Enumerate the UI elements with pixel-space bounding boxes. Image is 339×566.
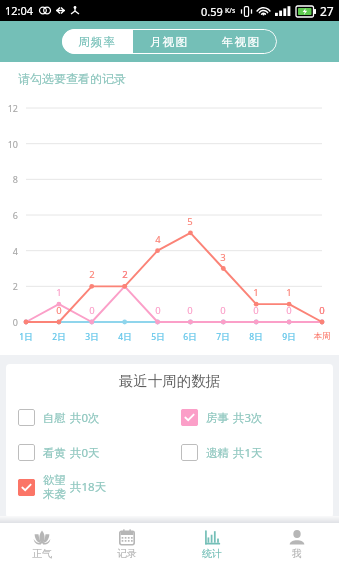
staticText: 遗精 — [206, 446, 229, 460]
staticText: 8 — [0, 173, 18, 185]
staticText: 0.59 — [201, 4, 223, 19]
staticText: 月视图 — [150, 35, 189, 49]
staticText: 0 — [148, 304, 168, 317]
button[interactable]: 月视图 — [133, 29, 205, 54]
staticText: 0 — [279, 304, 299, 317]
staticText: 1 — [49, 286, 69, 299]
staticText: 请勾选要查看的记录 — [18, 71, 126, 86]
staticText: 共18天 — [70, 479, 107, 495]
button[interactable]: 周频率 — [62, 29, 133, 54]
staticText: 最近十周的数据 — [6, 372, 333, 390]
staticText: 1 — [246, 286, 266, 299]
staticText: 0 — [0, 316, 18, 328]
button[interactable]: 年视图 — [205, 29, 277, 54]
staticText: 自慰 — [43, 411, 66, 425]
staticText: 4日 — [110, 331, 140, 343]
staticText: 12:04 — [5, 3, 34, 18]
button[interactable]: 正气 — [0, 523, 84, 566]
staticText: 年视图 — [222, 35, 261, 49]
staticText: 5日 — [143, 331, 173, 343]
staticText: 看黄 — [43, 446, 66, 460]
button[interactable]: 看黄 — [18, 444, 169, 461]
staticText: 27 — [320, 3, 334, 19]
staticText: 3 — [213, 251, 233, 264]
staticText: 8日 — [241, 331, 271, 343]
staticText: 0 — [49, 304, 69, 317]
staticText: 2 — [115, 268, 135, 281]
staticText: 12 — [0, 102, 18, 114]
staticText: 6日 — [175, 331, 205, 343]
staticText: 6 — [0, 209, 18, 221]
staticText: 7日 — [208, 331, 238, 343]
staticText: 2 — [82, 268, 102, 281]
staticText: 统计 — [202, 547, 222, 560]
staticText: 0 — [312, 304, 332, 317]
button[interactable]: 遗精 — [181, 444, 333, 461]
staticText: 0 — [246, 304, 266, 317]
staticText: K/s — [225, 6, 236, 16]
button[interactable]: 自慰 — [18, 409, 169, 426]
staticText: 0 — [82, 304, 102, 317]
staticText: 2 — [115, 268, 135, 281]
staticText: 房事 — [206, 411, 229, 425]
staticText: 共0次 — [70, 410, 100, 426]
staticText: 0 — [213, 304, 233, 317]
staticText: 5 — [180, 215, 200, 228]
staticText: 1日 — [11, 331, 41, 343]
staticText: 9日 — [274, 331, 304, 343]
button[interactable]: 记录 — [84, 523, 169, 566]
staticText: 周频率 — [78, 35, 117, 49]
staticText: 共1天 — [233, 445, 263, 461]
staticText: 2 — [0, 280, 18, 292]
staticText: 本周 — [307, 331, 337, 342]
staticText: 我 — [292, 547, 302, 560]
button[interactable]: 房事 — [181, 409, 333, 426]
staticText: 4 — [148, 233, 168, 246]
staticText: 正气 — [32, 547, 52, 560]
button[interactable]: 我 — [254, 523, 339, 566]
staticText: 记录 — [117, 547, 137, 560]
staticText: 共3次 — [233, 410, 263, 426]
staticText: 共0天 — [70, 445, 100, 461]
staticText: 3日 — [77, 331, 107, 343]
staticText: 0 — [312, 304, 332, 317]
button[interactable]: 统计 — [169, 523, 254, 566]
button[interactable]: 欲望 来袭 — [18, 470, 169, 504]
staticText: 0 — [180, 304, 200, 317]
staticText: 2日 — [44, 331, 74, 343]
staticText: 1 — [279, 286, 299, 299]
staticText: 欲望 来袭 — [43, 473, 66, 502]
staticText: 4 — [0, 245, 18, 257]
staticText: 10 — [0, 138, 18, 150]
